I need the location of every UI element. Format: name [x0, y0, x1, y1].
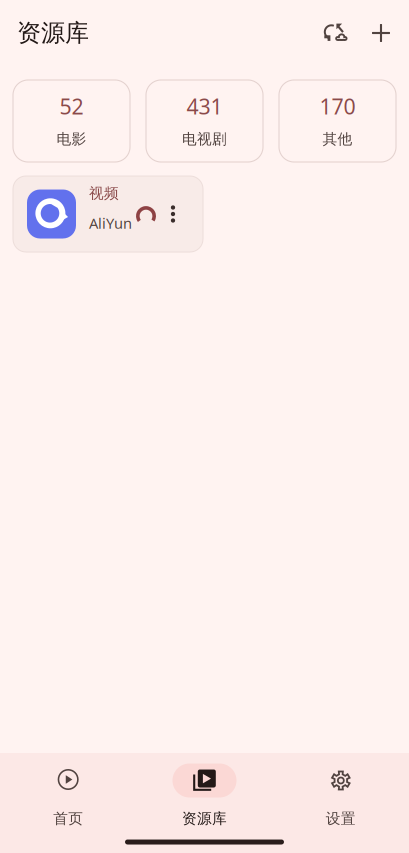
staticText: 52 [59, 92, 83, 120]
staticText: 电影 [56, 130, 86, 148]
button[interactable]: Add source [366, 18, 396, 48]
staticText: 170 [319, 92, 355, 120]
staticText: 资源库 [182, 809, 227, 827]
button[interactable]: Sync with cloud [318, 15, 354, 50]
button[interactable]: 431 [146, 80, 263, 162]
staticText: 首页 [53, 809, 83, 827]
staticText: 设置 [326, 809, 356, 827]
staticText: 资源库 [17, 18, 89, 48]
button[interactable]: 170 [279, 80, 396, 162]
button[interactable]: 资源库 [136, 763, 273, 831]
staticText: 其他 [322, 130, 352, 148]
staticText: 电视剧 [182, 130, 227, 148]
button[interactable]: 首页 [0, 763, 136, 831]
staticText: 视频 [89, 184, 119, 202]
staticText: AliYun [89, 213, 132, 233]
button[interactable]: 视频 [13, 176, 203, 252]
button[interactable]: 52 [13, 80, 130, 162]
button[interactable]: 设置 [273, 763, 409, 831]
staticText: 431 [186, 92, 222, 120]
